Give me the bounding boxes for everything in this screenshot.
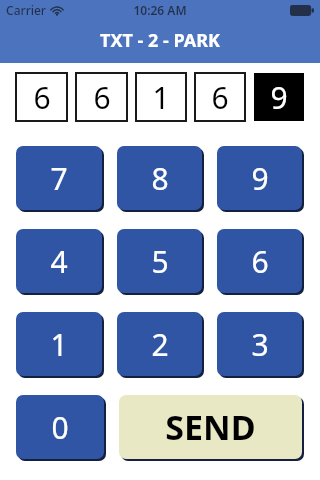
staticText: 7 — [50, 158, 68, 199]
button[interactable]: 7 — [16, 146, 102, 210]
staticText: 6 — [93, 77, 111, 118]
staticText: 6 — [33, 77, 51, 118]
button[interactable]: SEND — [119, 395, 302, 459]
button[interactable]: 1 — [16, 312, 102, 376]
staticText: 1 — [152, 77, 170, 118]
staticText: Carrier — [6, 2, 46, 18]
staticText: 3 — [251, 324, 269, 365]
button[interactable]: 9 — [217, 146, 302, 210]
staticText: 9 — [270, 77, 288, 118]
button[interactable]: 6 — [217, 229, 302, 293]
staticText: 1 — [50, 324, 68, 365]
button[interactable]: 0 — [16, 395, 104, 459]
button[interactable]: 4 — [16, 229, 102, 293]
staticText: TXT - 2 - PARK — [100, 28, 220, 53]
button[interactable]: 2 — [117, 312, 202, 376]
button[interactable]: 8 — [117, 146, 202, 210]
staticText: 6 — [251, 241, 269, 282]
staticText: 10:26 AM — [133, 2, 187, 18]
staticText: 0 — [51, 407, 69, 448]
staticText: 4 — [50, 241, 68, 282]
button[interactable]: 3 — [217, 312, 302, 376]
staticText: 6 — [211, 77, 229, 118]
staticText: 5 — [151, 241, 169, 282]
staticText: 9 — [251, 158, 269, 199]
staticText: SEND — [165, 404, 256, 450]
staticText: 8 — [151, 158, 169, 199]
staticText: 2 — [151, 324, 169, 365]
button[interactable]: 5 — [117, 229, 202, 293]
